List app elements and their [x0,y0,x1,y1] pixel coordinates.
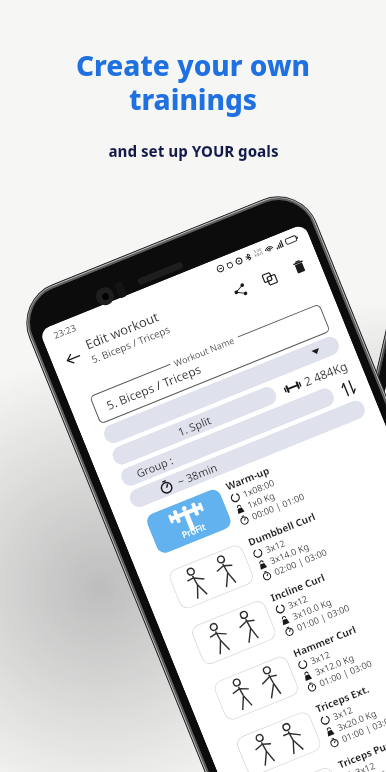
staticText: 2 484Kg [301,357,350,389]
staticText: Warm-up [223,463,271,493]
staticText: and set up YOUR goals [108,141,279,161]
staticText: 3x25.0 Kg [358,762,386,772]
staticText: Dumbbell Curl [246,509,318,549]
staticText: 5. Biceps / Triceps [104,360,204,413]
staticText: 3x12 [263,536,287,555]
button[interactable]: Group : [118,386,337,489]
button[interactable]: ProFit [143,420,386,559]
button[interactable]: Back [57,342,88,373]
staticText: 3x10.0 Kg [290,595,334,622]
staticText: 3x12.0 Kg [313,651,356,678]
staticText: Incline Curl [268,570,327,604]
staticText: Hammer Curl [291,622,358,660]
staticText: ~ 38min [175,459,220,489]
button[interactable]: Delete [285,252,313,281]
button[interactable]: Share [225,276,254,305]
staticText: Triceps Ext. [313,681,371,716]
staticText: Group : [134,452,176,481]
button[interactable]: Triceps Push [255,698,386,772]
button[interactable]: Sort [339,378,358,398]
staticText: 5.00 KB/S [252,246,264,259]
button[interactable]: 1. Split [110,384,279,467]
staticText: 3x12 [286,592,310,611]
staticText: 5. Biceps / Triceps [89,322,172,366]
button[interactable]: Hammer Curl [210,587,386,726]
button[interactable]: ~ 38min [127,398,368,510]
staticText: Create your own trainings [76,46,310,119]
staticText: 3x12 [308,647,332,666]
staticText: Triceps Push [336,735,386,771]
staticText: Workout Name [172,333,237,369]
staticText: 23:23 [52,321,78,341]
staticText: 1x0 Kg [245,489,277,511]
staticText: 01:00 | 03:00 [340,712,386,744]
button[interactable]: Incline Curl [188,531,386,671]
staticText: 01:00 | 03:00 [295,601,351,633]
button[interactable] [101,334,342,446]
button[interactable]: Duplicate [255,264,283,293]
staticText: 3x20.0 Kg [335,706,379,733]
button[interactable]: 5. Biceps / Triceps [89,304,330,424]
staticText: 1. Split [175,412,213,439]
staticText: 3x12 [353,759,377,772]
button[interactable]: Dumbbell Curl [165,476,386,615]
staticText: ProFit [180,520,207,540]
staticText: Edit workout [82,307,161,353]
staticText: 02:00 | 03:00 [272,545,329,577]
staticText: 01:00 | 03:00 [362,768,386,772]
button[interactable]: Triceps Ext. [233,642,386,772]
staticText: 3x14.0 Kg [268,539,311,566]
staticText: 01:00 | 03:00 [317,657,374,689]
staticText: 00:00 | 01:00 [250,490,306,522]
staticText: 1x08:00 [241,476,276,500]
staticText: 3x12 [331,703,355,722]
